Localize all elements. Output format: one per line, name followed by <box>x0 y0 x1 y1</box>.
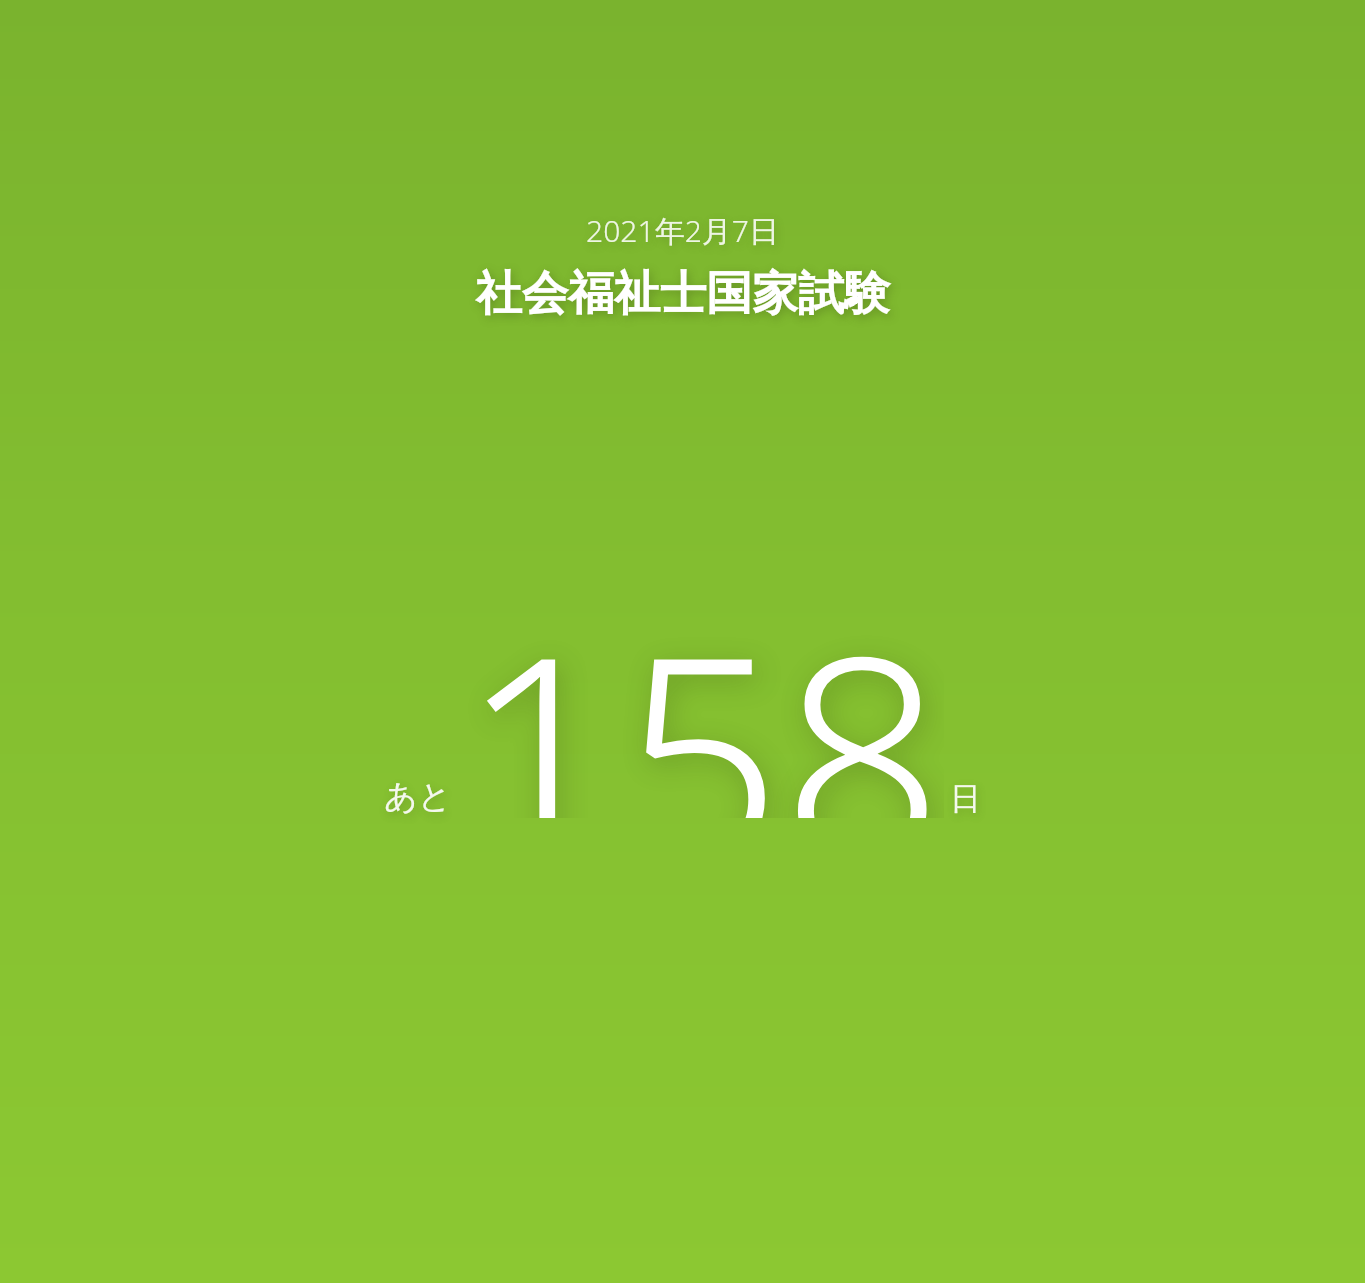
button[interactable]: あと <box>0 560 1365 818</box>
staticText: 2021年2月7日 <box>586 210 779 251</box>
staticText: 158 <box>460 560 944 818</box>
staticText: 社会福祉士国家試験 <box>476 265 890 323</box>
button[interactable]: 2021年2月7日 <box>0 0 1365 1283</box>
staticText: あと <box>384 776 452 818</box>
staticText: 日 <box>950 779 981 818</box>
other: 社会福祉士国家試験までのカウントダウン <box>0 0 1365 1283</box>
